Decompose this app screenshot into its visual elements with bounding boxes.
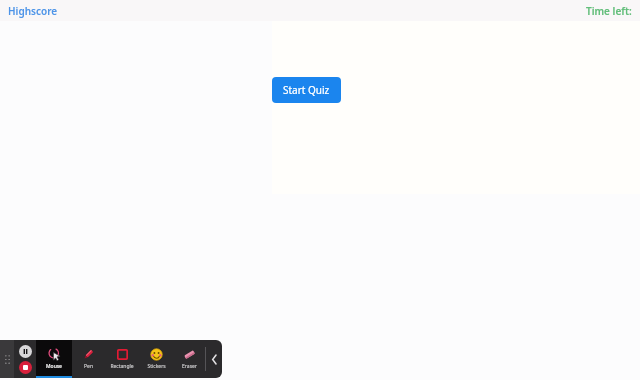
button[interactable]: Time left: [578, 2, 640, 20]
staticText: Time left: [586, 4, 632, 18]
button[interactable]: Pause [19, 345, 32, 358]
button[interactable]: Mouse [36, 340, 72, 378]
button[interactable]: Rectangle [104, 340, 140, 378]
button[interactable]: Start Quiz [272, 77, 341, 103]
button[interactable]: Stop recording [19, 361, 32, 374]
staticText: Rectangle [110, 363, 134, 370]
staticText: Eraser [182, 363, 197, 370]
staticText: Mouse [46, 363, 62, 370]
button[interactable]: Collapse toolbar [206, 340, 222, 378]
button[interactable]: Stickers [140, 340, 173, 378]
staticText: Start Quiz [283, 83, 330, 97]
button[interactable]: Move toolbar [0, 340, 14, 378]
staticText: Highscore [8, 4, 58, 18]
staticText: Pen [84, 363, 93, 370]
button[interactable]: Eraser [173, 340, 205, 378]
button[interactable]: Pen [72, 340, 104, 378]
staticText: Stickers [147, 363, 166, 370]
button[interactable]: Highscore [0, 2, 66, 20]
